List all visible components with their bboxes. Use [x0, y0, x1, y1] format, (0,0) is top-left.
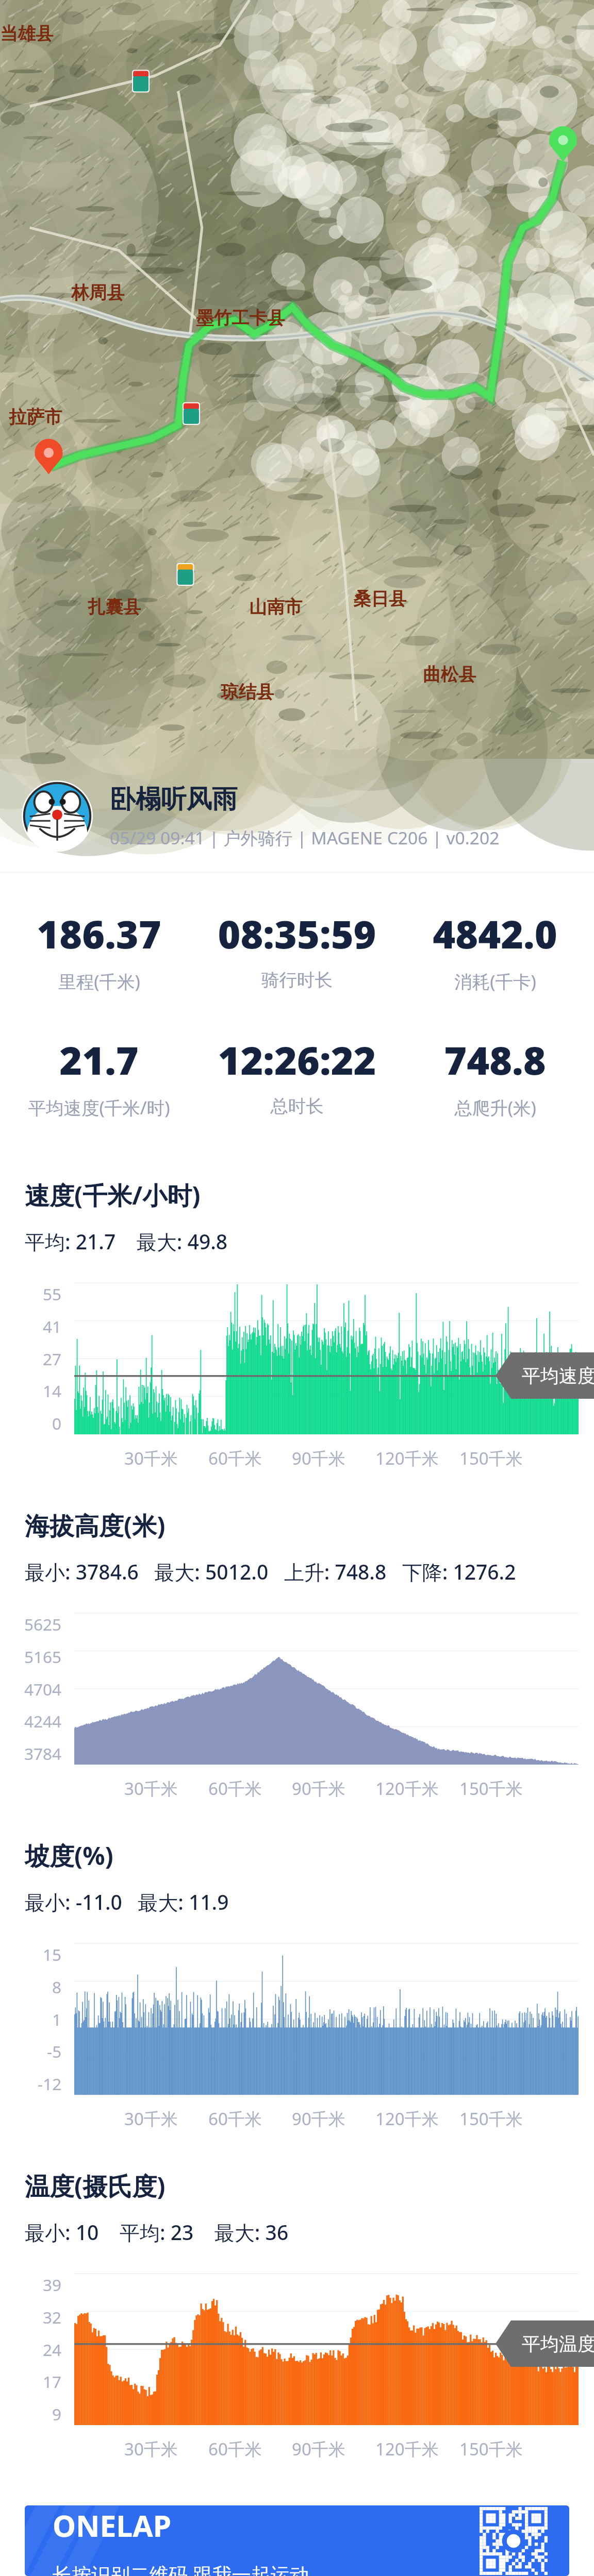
staticText: 坡度(%): [25, 1839, 113, 1873]
staticText: 15: [43, 1943, 62, 1965]
staticText: 30千米: [124, 1447, 178, 1470]
staticText: 60千米: [208, 2437, 262, 2461]
staticText: -5: [47, 2040, 62, 2062]
other: QR code: [480, 2507, 548, 2575]
button[interactable]: 21.7: [0, 1033, 198, 1120]
staticText: 1: [52, 2008, 62, 2030]
staticText: 90千米: [292, 2437, 345, 2461]
staticText: 150千米: [459, 2437, 523, 2461]
staticText: 里程(千米): [58, 969, 140, 993]
staticText: 4244: [24, 1710, 62, 1732]
staticText: 30千米: [124, 1777, 178, 1800]
staticText: 扎囊县: [88, 596, 141, 618]
staticText: ONELAP: [53, 2505, 172, 2546]
staticText: 卧榻听风雨: [110, 783, 238, 815]
staticText: 骑行时长: [261, 969, 333, 991]
button[interactable]: 平均温度: [74, 2274, 579, 2425]
staticText: 39: [43, 2274, 62, 2296]
staticText: 55: [43, 1283, 62, 1305]
staticText: 平均温度: [522, 2332, 594, 2355]
staticText: 平均速度(千米/时): [28, 1095, 170, 1120]
button[interactable]: 08:35:59: [198, 907, 396, 991]
staticText: 120千米: [375, 1777, 439, 1800]
staticText: 9: [52, 2403, 62, 2425]
button[interactable]: ONELAP: [25, 2505, 569, 2576]
staticText: 4704: [24, 1678, 62, 1700]
staticText: 27: [43, 1348, 62, 1370]
staticText: 长按识别二维码 跟我一起运动: [53, 2561, 309, 2576]
staticText: 墨竹工卡县: [196, 307, 285, 329]
staticText: 120千米: [375, 2107, 439, 2130]
staticText: 150千米: [459, 2107, 523, 2130]
staticText: 90千米: [292, 1447, 345, 1470]
staticText: 30千米: [124, 2437, 178, 2461]
staticText: 748.8: [444, 1033, 546, 1086]
staticText: 30千米: [124, 2107, 178, 2130]
staticText: 速度(千米/小时): [25, 1178, 201, 1212]
staticText: 120千米: [375, 1447, 439, 1470]
staticText: 当雄县: [0, 23, 54, 45]
staticText: 90千米: [292, 1777, 345, 1800]
button[interactable]: Route map: [0, 0, 594, 759]
button[interactable]: 748.8: [396, 1033, 594, 1120]
staticText: 41: [43, 1315, 62, 1337]
staticText: 21.7: [59, 1033, 139, 1086]
staticText: 17: [43, 2370, 62, 2393]
button[interactable]: 186.37: [0, 907, 198, 993]
staticText: 186.37: [37, 907, 161, 960]
staticText: 山南市: [249, 596, 303, 618]
staticText: 平均速度: [522, 1364, 594, 1387]
staticText: 平均: 21.7 最大: 49.8: [25, 1228, 228, 1255]
staticText: 总时长: [270, 1095, 324, 1117]
staticText: 4842.0: [433, 907, 557, 960]
button[interactable]: 12:26:22: [198, 1033, 396, 1117]
button[interactable]: [74, 1943, 579, 2095]
staticText: 5625: [24, 1613, 62, 1635]
button[interactable]: 平均速度: [74, 1283, 579, 1434]
staticText: 8: [52, 1976, 62, 1998]
staticText: 32: [43, 2306, 62, 2328]
staticText: 90千米: [292, 2107, 345, 2130]
staticText: -12: [38, 2073, 62, 2095]
staticText: 60千米: [208, 1447, 262, 1470]
staticText: 琼结县: [221, 681, 274, 703]
staticText: 桑日县: [353, 588, 407, 610]
staticText: 曲松县: [423, 664, 476, 686]
staticText: 60千米: [208, 2107, 262, 2130]
staticText: 最小: 3784.6 最大: 5012.0 上升: 748.8 下降: 1276…: [25, 1558, 516, 1585]
staticText: 150千米: [459, 1447, 523, 1470]
staticText: 最小: -11.0 最大: 11.9: [25, 1888, 229, 1916]
button[interactable]: 4842.0: [396, 907, 594, 993]
staticText: 拉萨市: [9, 406, 62, 428]
button[interactable]: [74, 1613, 579, 1765]
staticText: 60千米: [208, 1777, 262, 1800]
staticText: 08:35:59: [218, 907, 376, 960]
staticText: 05/29 09:41 | 户外骑行 | MAGENE C206 | v0.20…: [110, 826, 500, 850]
button[interactable]: 卧榻听风雨: [0, 759, 594, 872]
staticText: 120千米: [375, 2437, 439, 2461]
staticText: 总爬升(米): [454, 1095, 536, 1120]
staticText: 林周县: [71, 282, 125, 304]
staticText: 温度(摄氏度): [25, 2169, 166, 2203]
staticText: 14: [43, 1380, 62, 1402]
staticText: 150千米: [459, 1777, 523, 1800]
staticText: 12:26:22: [218, 1033, 376, 1086]
staticText: 消耗(千卡): [454, 969, 536, 993]
staticText: 3784: [24, 1742, 62, 1765]
staticText: 0: [52, 1412, 62, 1434]
staticText: 海拔高度(米): [25, 1509, 166, 1543]
staticText: 5165: [24, 1646, 62, 1668]
staticText: 24: [43, 2338, 62, 2361]
staticText: 最小: 10 平均: 23 最大: 36: [25, 2218, 289, 2246]
